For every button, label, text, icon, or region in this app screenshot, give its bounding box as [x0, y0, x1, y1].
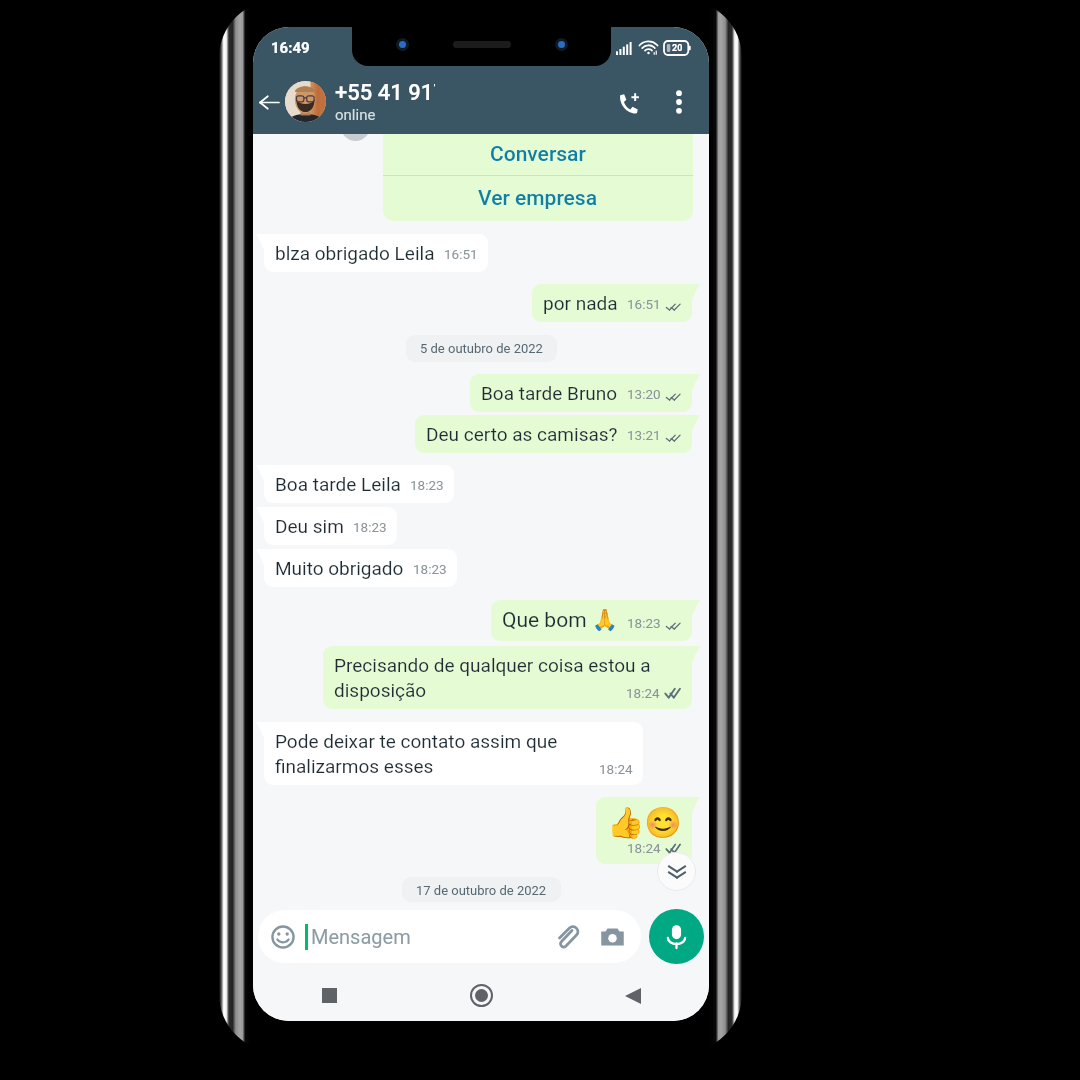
- other: Attach: [554, 924, 579, 949]
- staticText: 16:51: [627, 296, 661, 312]
- other: Camera: [600, 924, 625, 949]
- staticText: +55 41 917: [335, 80, 435, 106]
- staticText: por nada: [543, 292, 618, 314]
- staticText: 17 de outubro de 2022: [416, 883, 547, 896]
- staticText: 18:23: [627, 615, 661, 631]
- button[interactable]: Boa tarde Bruno: [470, 374, 692, 412]
- staticText: 5 de outubro de 2022: [420, 341, 543, 356]
- button[interactable]: Conversar: [383, 134, 693, 175]
- button[interactable]: Que bom 🙏: [491, 600, 692, 641]
- staticText: Boa tarde Bruno: [481, 382, 618, 404]
- button[interactable]: More options: [664, 87, 694, 117]
- staticText: Muito obrigado: [275, 557, 404, 579]
- button[interactable]: Deu sim: [264, 507, 397, 545]
- staticText: 18:23: [410, 477, 444, 493]
- button[interactable]: Deu certo as camisas?: [415, 415, 692, 453]
- staticText: blza obrigado Leila: [275, 242, 435, 264]
- button[interactable]: Recents: [253, 970, 405, 1021]
- staticText: 18:24: [626, 685, 660, 701]
- staticText: Conversar: [490, 142, 586, 167]
- button[interactable]: Muito obrigado: [264, 549, 457, 587]
- button[interactable]: Precisando de qualquer coisa estou a dis…: [323, 646, 692, 709]
- button[interactable]: Back: [253, 83, 285, 121]
- staticText: Boa tarde Leila: [275, 473, 401, 495]
- button[interactable]: Mensagem: [258, 910, 641, 963]
- staticText: 16:49: [271, 39, 310, 57]
- staticText: 13:21: [627, 427, 661, 443]
- staticText: 18:24: [627, 840, 661, 856]
- staticText: Precisando de qualquer coisa estou a dis…: [334, 654, 682, 701]
- button[interactable]: Back: [557, 970, 709, 1021]
- button[interactable]: Scroll to bottom: [657, 852, 696, 891]
- button[interactable]: Record voice message: [649, 909, 704, 964]
- staticText: 20: [672, 43, 683, 54]
- button[interactable]: Pode deixar te contato assim que finaliz…: [264, 722, 643, 785]
- button[interactable]: 👍😊: [596, 797, 692, 864]
- staticText: Mensagem: [311, 925, 411, 948]
- button[interactable]: Home: [405, 970, 557, 1021]
- staticText: Que bom 🙏: [502, 608, 618, 633]
- button[interactable]: Video call: [610, 83, 648, 121]
- staticText: Deu sim: [275, 515, 344, 537]
- staticText: 13:20: [627, 386, 661, 402]
- button[interactable]: Ver empresa: [383, 176, 693, 221]
- staticText: Pode deixar te contato assim que finaliz…: [275, 730, 633, 777]
- staticText: 18:24: [599, 761, 633, 777]
- button[interactable]: Boa tarde Leila: [264, 465, 454, 503]
- staticText: Ver empresa: [478, 186, 598, 211]
- staticText: 16:51: [444, 246, 478, 262]
- staticText: online: [335, 106, 376, 124]
- staticText: Deu certo as camisas?: [426, 423, 618, 445]
- button[interactable]: por nada: [532, 284, 692, 322]
- staticText: 18:23: [413, 561, 447, 577]
- staticText: 👍😊: [607, 805, 682, 840]
- staticText: 18:23: [353, 519, 387, 535]
- button[interactable]: blza obrigado Leila: [264, 234, 488, 272]
